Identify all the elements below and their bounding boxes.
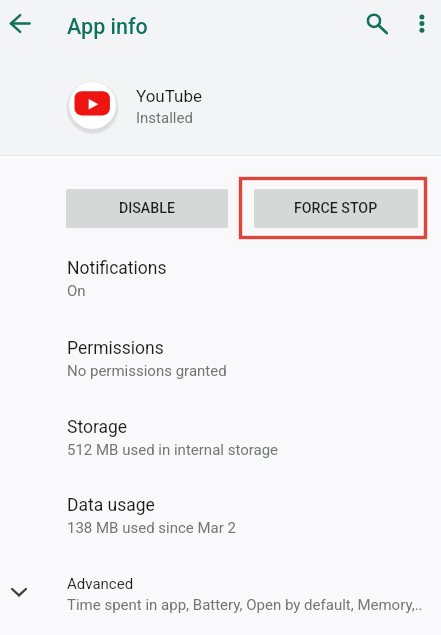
button[interactable]: Permissions [0, 338, 441, 400]
staticText: Data usage [67, 495, 155, 516]
staticText: YouTube [136, 86, 203, 106]
button[interactable]: Search [354, 1, 394, 41]
staticText: Advanced [67, 575, 134, 593]
button[interactable]: Notifications [0, 258, 441, 320]
staticText: FORCE STOP [294, 200, 378, 217]
button[interactable]: DISABLE [66, 189, 228, 228]
button[interactable]: Advanced [0, 575, 441, 635]
staticText: DISABLE [119, 200, 175, 217]
staticText: App info [67, 14, 148, 39]
staticText: No permissions granted [67, 362, 227, 380]
button[interactable]: Data usage [0, 495, 441, 557]
staticText: 138 MB used since Mar 2 [67, 519, 237, 537]
staticText: Storage [67, 417, 128, 438]
staticText: Notifications [67, 258, 167, 279]
staticText: Time spent in app, Battery, Open by defa… [67, 596, 423, 614]
staticText: On [67, 282, 86, 300]
button[interactable]: Expand advanced [1, 574, 38, 611]
staticText: 512 MB used in internal storage [67, 441, 279, 459]
staticText: Permissions [67, 338, 164, 359]
button[interactable]: More options [402, 1, 441, 40]
button[interactable]: Back [0, 3, 41, 44]
button[interactable]: Storage [0, 417, 441, 479]
button[interactable]: FORCE STOP [254, 189, 418, 228]
staticText: Installed [136, 109, 193, 127]
